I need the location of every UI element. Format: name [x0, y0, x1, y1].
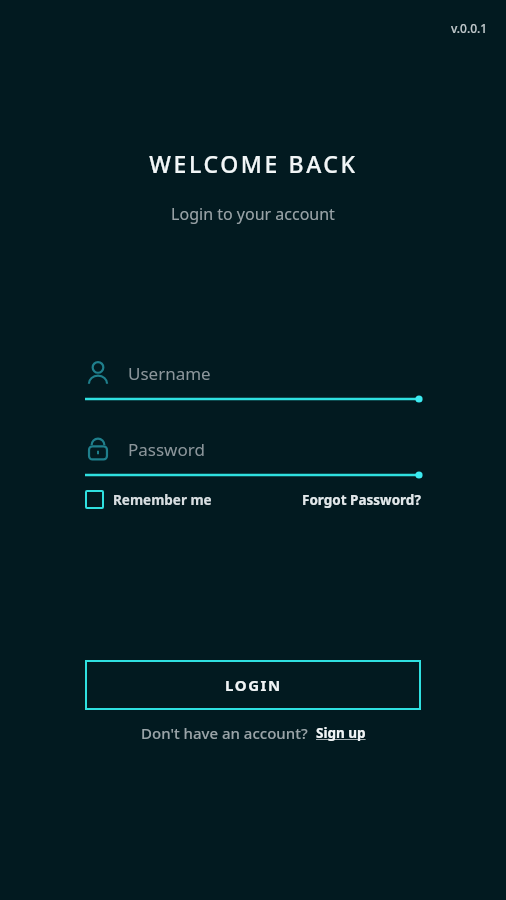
button[interactable]: Forgot Password?: [302, 491, 421, 509]
button[interactable]: Username icon: [85, 360, 421, 404]
other: Username icon: [85, 360, 111, 386]
staticText: Remember me: [113, 491, 212, 509]
staticText: Sign up: [316, 724, 366, 742]
staticText: Password: [128, 438, 205, 461]
staticText: Login to your account: [171, 203, 335, 225]
button[interactable]: LOGIN: [85, 660, 421, 710]
staticText: LOGIN: [225, 675, 282, 695]
button[interactable]: Password icon: [85, 436, 421, 480]
button[interactable]: Remember me: [85, 490, 212, 509]
staticText: Don't have an account?: [141, 723, 308, 743]
staticText: v.0.0.1: [451, 20, 488, 36]
button[interactable]: Sign up: [316, 724, 366, 742]
staticText: WELCOME BACK: [149, 148, 358, 179]
other: Password icon: [85, 436, 111, 462]
staticText: Forgot Password?: [302, 491, 421, 509]
staticText: Username: [128, 362, 211, 385]
